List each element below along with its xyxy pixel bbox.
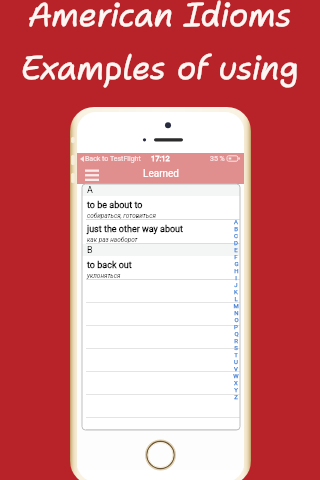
staticText: B: [87, 245, 93, 256]
staticText: Back to TestFlight: [85, 155, 141, 163]
staticText: собираться, готовиться: [87, 212, 156, 220]
staticText: 17:12: [151, 154, 170, 163]
staticText: to be about to: [87, 200, 143, 211]
staticText: L: [234, 295, 238, 302]
button[interactable]: to be about to: [82, 196, 240, 220]
staticText: H: [234, 267, 239, 274]
staticText: D: [234, 239, 238, 246]
staticText: S: [234, 344, 238, 351]
staticText: V: [234, 365, 238, 372]
staticText: to back out: [87, 260, 132, 271]
staticText: W: [233, 372, 239, 379]
staticText: Examples of using: [0, 46, 320, 90]
staticText: J: [234, 281, 238, 288]
staticText: Y: [234, 386, 238, 393]
staticText: U: [234, 358, 238, 365]
staticText: N: [234, 309, 239, 316]
staticText: уклоняться: [87, 272, 121, 280]
staticText: R: [234, 337, 238, 344]
staticText: K: [234, 288, 238, 295]
staticText: A: [87, 185, 93, 196]
staticText: как раз наоборот: [87, 236, 138, 244]
staticText: C: [234, 232, 238, 239]
button[interactable]: just the other way about: [82, 220, 240, 244]
staticText: 35 %: [210, 155, 225, 163]
staticText: M: [233, 302, 239, 309]
staticText: American Idioms: [0, 0, 320, 37]
staticText: E: [234, 246, 238, 253]
staticText: Learned: [143, 168, 179, 180]
staticText: X: [234, 379, 238, 386]
staticText: Q: [234, 330, 239, 337]
staticText: B: [234, 225, 238, 232]
staticText: O: [234, 316, 239, 323]
staticText: A: [234, 218, 238, 225]
staticText: Z: [234, 393, 238, 400]
button[interactable]: Menu: [85, 168, 99, 180]
staticText: just the other way about: [87, 224, 184, 235]
staticText: G: [234, 260, 239, 267]
staticText: P: [234, 323, 238, 330]
button[interactable]: to back out: [82, 256, 240, 280]
staticText: F: [234, 253, 238, 260]
staticText: T: [234, 351, 238, 358]
staticText: I: [235, 274, 237, 281]
